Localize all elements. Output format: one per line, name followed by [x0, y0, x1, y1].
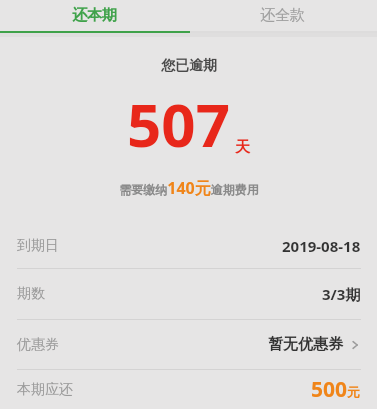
staticText: 天: [235, 138, 250, 157]
staticText: 期数: [17, 285, 45, 303]
button[interactable]: 还本期: [0, 0, 188, 31]
staticText: 3/3期: [322, 284, 361, 304]
staticText: 需要缴纳140元逾期费用: [119, 177, 259, 199]
staticText: 500元: [311, 375, 361, 404]
staticText: 还本期: [72, 6, 117, 25]
staticText: 您已逾期: [161, 57, 217, 75]
staticText: 还全款: [260, 6, 305, 25]
staticText: 暂无优惠券: [268, 335, 343, 354]
staticText: 优惠券: [17, 336, 59, 354]
staticText: 2019-08-18: [282, 236, 361, 256]
button[interactable]: 还全款: [188, 0, 377, 31]
button[interactable]: 优惠券: [0, 320, 377, 369]
staticText: 到期日: [17, 237, 59, 255]
staticText: 本期应还: [17, 381, 73, 399]
staticText: 507: [127, 83, 230, 165]
